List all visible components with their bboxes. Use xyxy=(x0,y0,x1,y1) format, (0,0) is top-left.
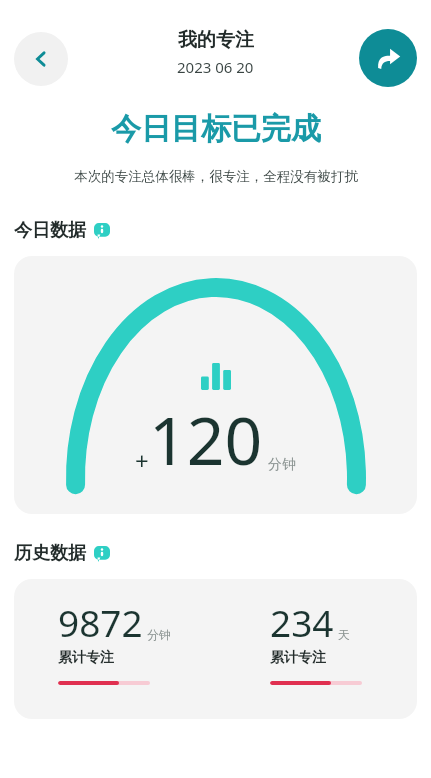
staticText: 120 xyxy=(149,394,263,484)
button[interactable]: 234 xyxy=(215,579,417,719)
staticText: 天 xyxy=(338,627,350,642)
staticText: 分钟 xyxy=(147,627,171,642)
staticText: 9872 xyxy=(58,597,143,647)
button[interactable]: + xyxy=(14,256,417,514)
button[interactable]: Back xyxy=(14,32,68,86)
staticText: + xyxy=(135,444,149,477)
button[interactable]: 9872 xyxy=(14,579,215,719)
staticText: 234 xyxy=(270,597,334,647)
button[interactable]: 9872 xyxy=(14,579,417,719)
staticText: 今日数据 xyxy=(14,219,86,242)
button[interactable]: Share xyxy=(359,29,417,87)
button[interactable]: 历史数据 xyxy=(14,542,110,565)
staticText: 2023 06 20 xyxy=(177,57,254,77)
staticText: 累计专注 xyxy=(58,649,114,667)
staticText: 今日目标已完成 xyxy=(111,110,321,148)
staticText: 累计专注 xyxy=(270,649,326,667)
staticText: 本次的专注总体很棒，很专注，全程没有被打扰 xyxy=(74,168,358,185)
staticText: 我的专注 xyxy=(178,28,254,52)
staticText: 历史数据 xyxy=(14,542,86,565)
button[interactable]: 今日数据 xyxy=(14,219,110,242)
staticText: 分钟 xyxy=(268,456,296,474)
